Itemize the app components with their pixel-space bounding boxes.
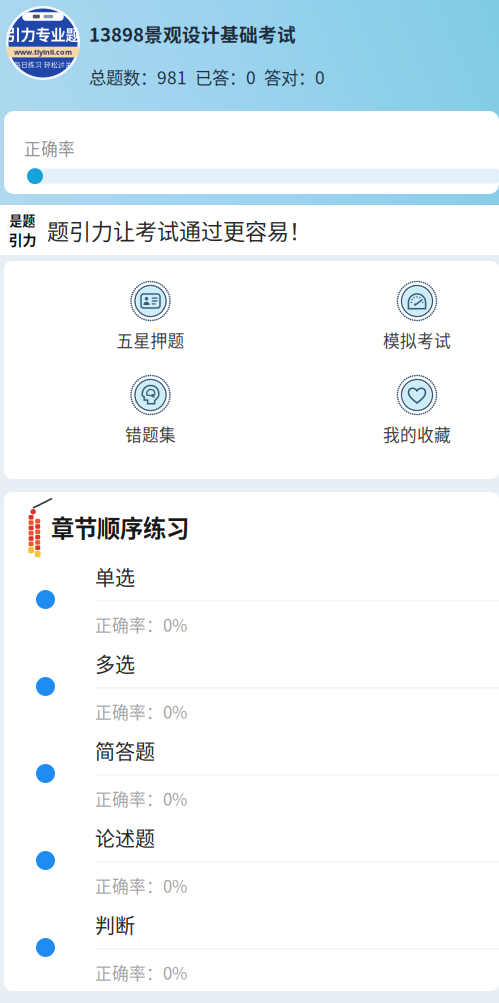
staticText: 13898景观设计基础考试 [89,20,296,47]
staticText: 正确率 [24,136,75,160]
staticText: 论述题 [95,823,155,852]
staticText: 多选 [95,649,135,678]
staticText: 我的收藏 [383,422,451,446]
button[interactable]: 单选 [4,556,499,643]
button[interactable]: 论述题 [4,817,499,904]
button[interactable]: 判断 [4,904,499,991]
staticText: 模拟考试 [383,328,451,352]
staticText: 错题集 [125,422,176,446]
staticText: 正确率：0% [95,786,187,811]
staticText: 正确率：0% [95,612,187,637]
staticText: 简答题 [95,736,155,765]
staticText: 单选 [95,562,135,591]
button[interactable]: 模拟考试 [297,279,499,351]
staticText: 引力专业题 [5,23,80,45]
staticText: 正确率：0% [95,873,187,898]
button[interactable]: 错题集 [4,373,297,445]
staticText: www.tiyinli.com [14,47,72,57]
staticText: 题引力让考试通过更容易！ [47,214,311,246]
button[interactable]: 我的收藏 [297,373,499,445]
button[interactable]: 五星押题 [4,279,297,351]
staticText: 五星押题 [116,328,184,352]
button[interactable]: 多选 [4,643,499,730]
staticText: 正确率：0% [95,699,187,724]
staticText: 正确率：0% [95,960,187,985]
staticText: 是题 [9,211,35,229]
button[interactable]: 简答题 [4,730,499,817]
staticText: 每日练习 轻松过关 [14,60,72,69]
staticText: 引力 [8,229,36,249]
staticText: 总题数：981 已答：0 答对：0 [89,64,325,89]
button[interactable]: 是题 [0,205,499,255]
staticText: 判断 [95,910,135,939]
staticText: 章节顺序练习 [51,510,189,544]
